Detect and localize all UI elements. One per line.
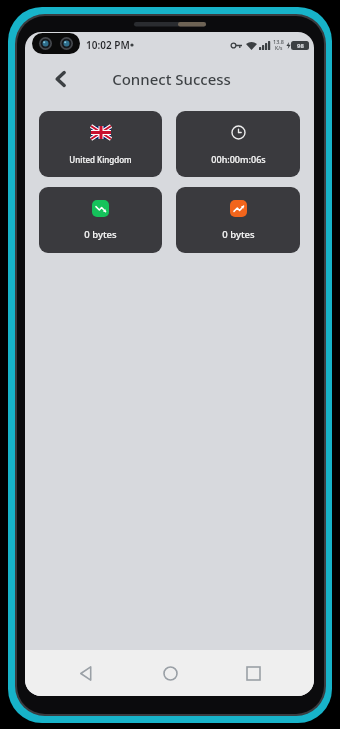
button[interactable]: 00h:00m:06s [176,111,300,177]
button[interactable]: United Kingdom [39,111,162,177]
button[interactable]: 0 bytes [176,187,300,253]
staticText: 00h:00m:06s [211,153,266,165]
staticText: 0 bytes [222,228,255,241]
staticText: K/s [275,45,283,52]
staticText: 0 bytes [84,228,117,241]
staticText: United Kingdom [69,154,132,165]
staticText: 98 [297,42,304,50]
button[interactable]: Back [45,63,77,95]
button[interactable]: 0 bytes [39,187,162,253]
button[interactable]: Recent apps [231,651,275,695]
staticText: Connect Success [112,69,231,89]
staticText: 10:02 PM [86,38,130,52]
staticText: 13.8 [273,38,284,45]
button[interactable]: Home [148,651,192,695]
button[interactable]: Back [64,651,108,695]
